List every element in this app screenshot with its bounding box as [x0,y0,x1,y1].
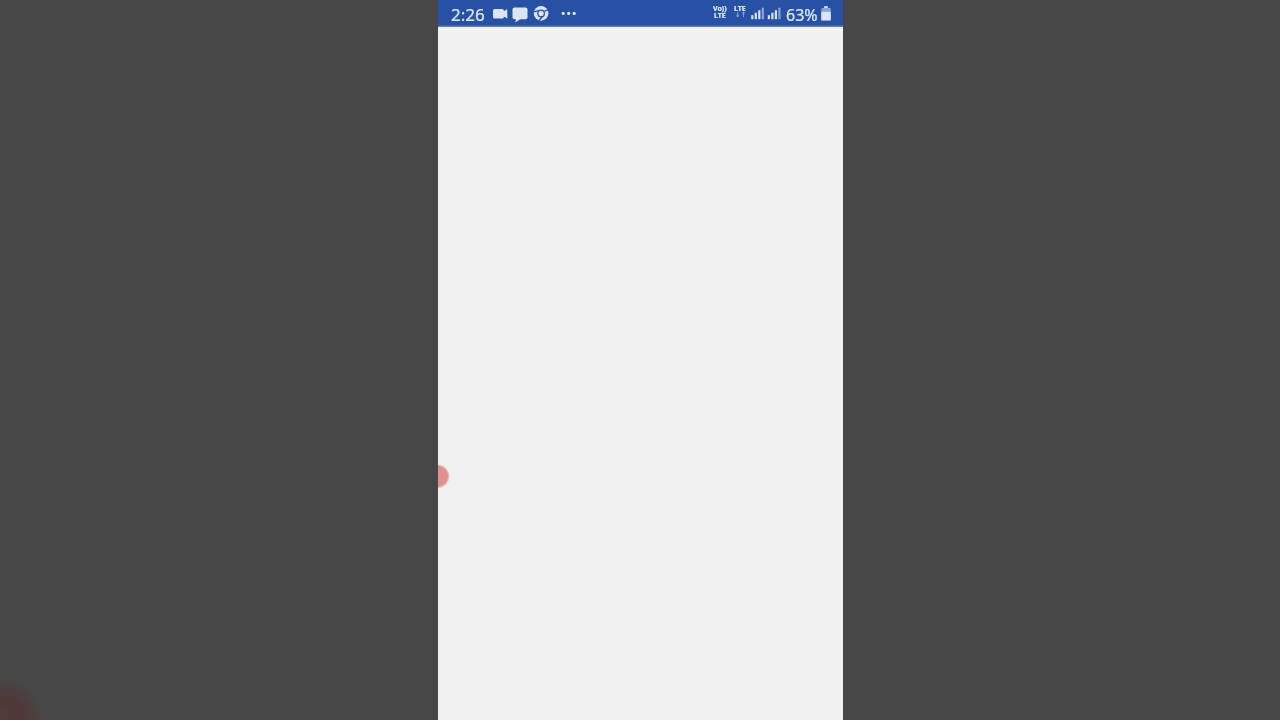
staticText: ↓↑ [735,11,747,19]
staticText: Vo)) [713,4,727,14]
button[interactable] [438,464,451,489]
staticText: LTE [714,11,726,21]
staticText: 2:26 [451,3,485,26]
staticText: 63% [786,4,818,26]
staticText: LTE [734,4,746,14]
